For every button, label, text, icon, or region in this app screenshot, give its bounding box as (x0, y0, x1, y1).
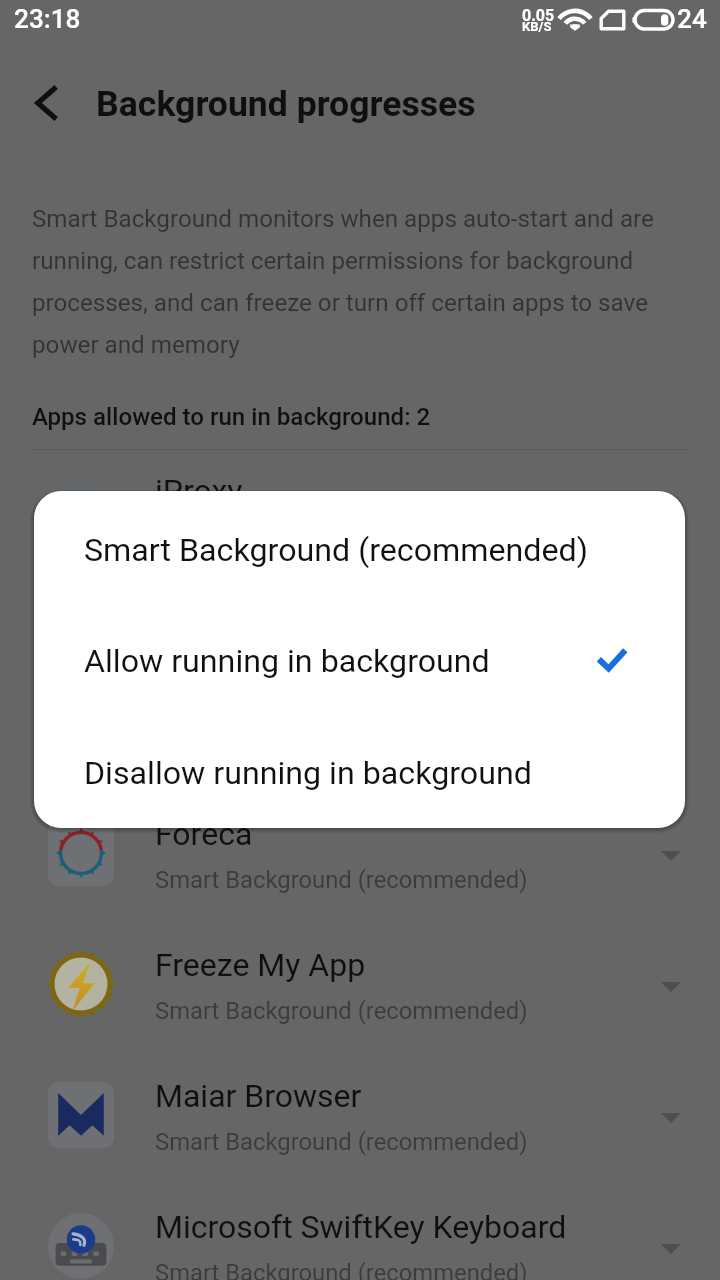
staticText: Allow running in background (84, 642, 490, 680)
staticText: iProxy (155, 472, 243, 510)
button[interactable]: Smart Background (recommended) (34, 500, 685, 592)
staticText: Freeze My App (155, 946, 366, 984)
button[interactable]: Microsoft SwiftKey Keyboard (0, 1184, 720, 1280)
button[interactable]: Allow running in background (34, 611, 685, 703)
button[interactable]: Back (17, 73, 77, 133)
staticText: Smart Background (recommended) (155, 866, 528, 894)
staticText: Apps allowed to run in background: 2 (32, 403, 431, 431)
staticText: Smart Background monitors when apps auto… (32, 194, 680, 362)
button[interactable]: Foreca (0, 579, 720, 710)
staticText: Smart Background (recommended) (155, 1259, 528, 1280)
staticText: Freeze My App (155, 734, 366, 772)
staticText: Background progresses (96, 83, 476, 125)
staticText: KB/S (522, 19, 552, 34)
staticText: Smart Background (recommended) (155, 1128, 528, 1156)
staticText: Smart Background (recommended) (84, 531, 588, 569)
staticText: Smart Background (recommended) (155, 654, 528, 682)
staticText: 24 (677, 4, 707, 35)
button[interactable]: Freeze My App (0, 710, 720, 841)
staticText: 23:18 (14, 4, 81, 35)
staticText: 0.05 (522, 6, 555, 25)
staticText: Smart Background (recommended) (155, 785, 528, 813)
button[interactable]: Freeze My App (0, 922, 720, 1053)
staticText: Smart Background (recommended) (155, 523, 528, 551)
staticText: Microsoft SwiftKey Keyboard (155, 1208, 567, 1246)
staticText: Smart Background (recommended) (155, 997, 528, 1025)
staticText: Disallow running in background (84, 754, 532, 792)
button[interactable]: Maiar Browser (0, 1053, 720, 1184)
button[interactable]: iProxy (0, 448, 720, 579)
staticText: Maiar Browser (155, 1077, 362, 1115)
button[interactable]: Disallow running in background (34, 723, 685, 815)
staticText: Foreca (155, 815, 253, 853)
button[interactable]: Foreca (0, 791, 720, 922)
